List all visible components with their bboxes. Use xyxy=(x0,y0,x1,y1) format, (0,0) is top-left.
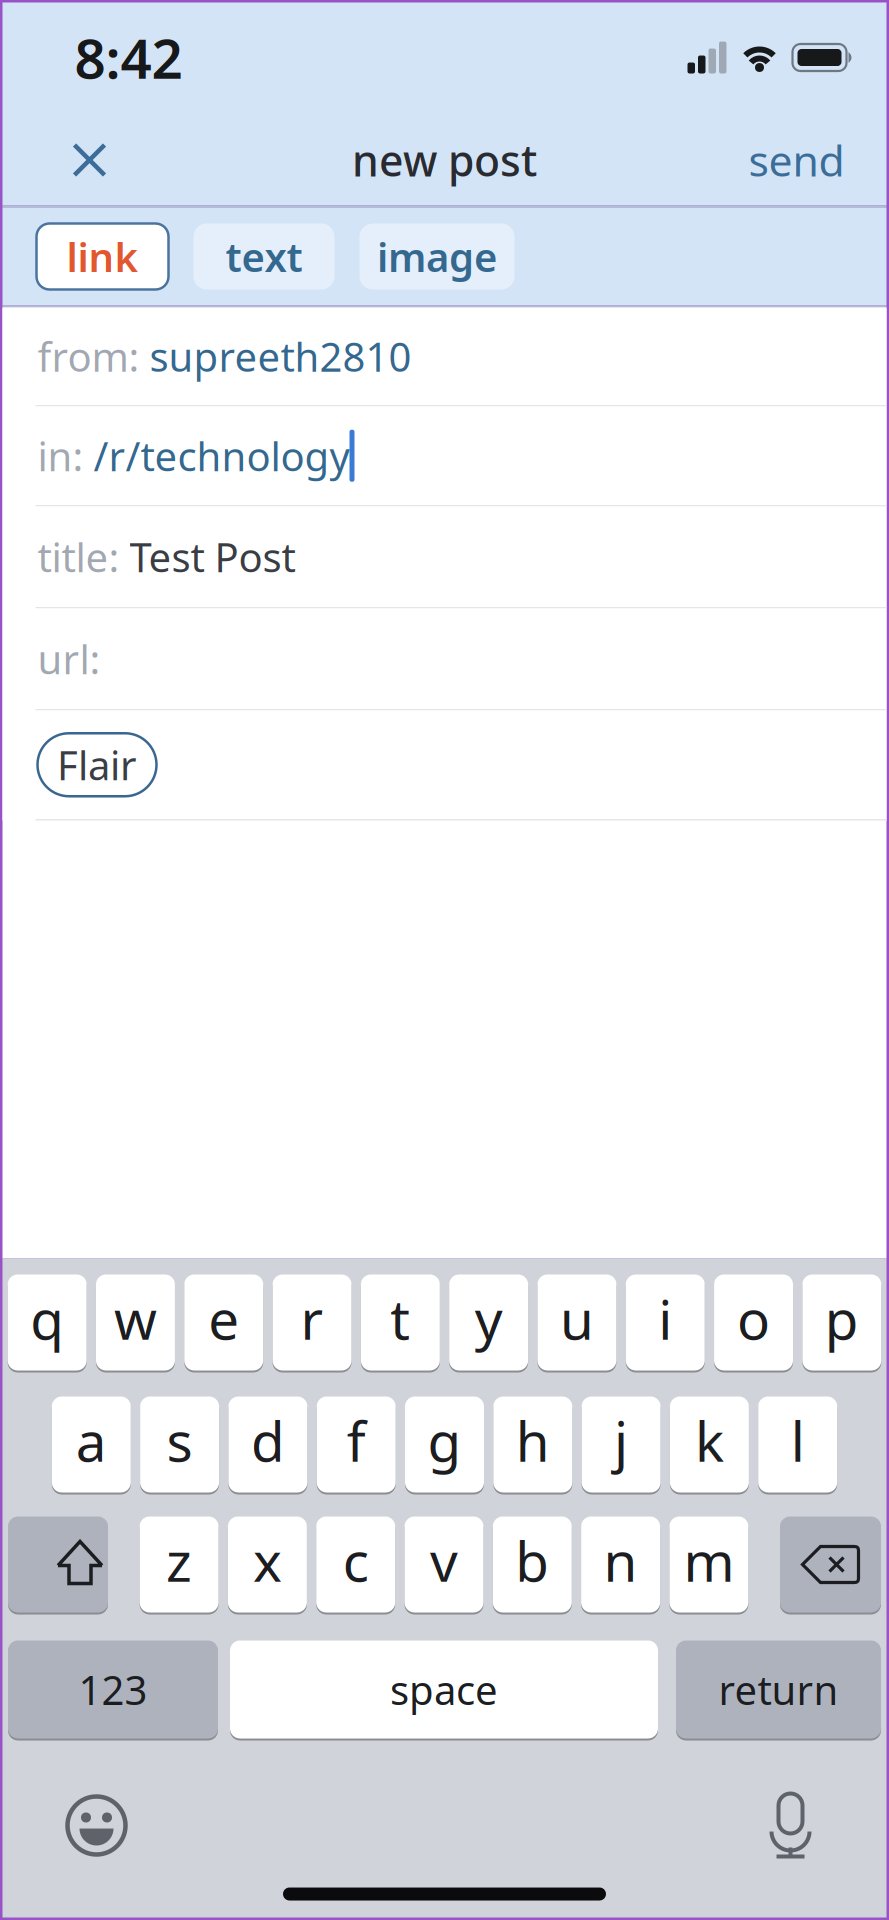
staticText: a xyxy=(76,1404,107,1477)
staticText: e xyxy=(208,1282,239,1355)
staticText: link xyxy=(66,230,138,283)
staticText: in: xyxy=(37,429,93,482)
button[interactable]: d xyxy=(228,1395,307,1493)
button[interactable]: title: xyxy=(2,506,886,608)
button[interactable]: c xyxy=(316,1515,395,1613)
staticText: h xyxy=(516,1404,550,1477)
staticText: v xyxy=(430,1524,458,1597)
button[interactable]: o xyxy=(714,1273,793,1371)
staticText: 8:42 xyxy=(74,21,182,94)
button[interactable]: Emoji xyxy=(2,1796,125,1854)
staticText: u xyxy=(560,1282,594,1355)
staticText: 123 xyxy=(78,1663,147,1716)
staticText: /r/technology xyxy=(93,429,349,482)
staticText: d xyxy=(251,1404,285,1477)
staticText: k xyxy=(695,1404,724,1477)
button[interactable]: space xyxy=(230,1639,658,1739)
staticText: b xyxy=(515,1524,549,1597)
button[interactable]: a xyxy=(52,1395,131,1493)
button[interactable]: 123 xyxy=(8,1639,218,1739)
staticText: space xyxy=(390,1663,498,1716)
staticText: q xyxy=(30,1282,64,1355)
staticText: title: xyxy=(37,530,129,583)
button[interactable]: h xyxy=(493,1395,572,1493)
staticText: o xyxy=(737,1282,770,1355)
staticText: w xyxy=(114,1282,157,1355)
button[interactable]: Flair xyxy=(37,733,156,796)
staticText: url: xyxy=(37,632,100,685)
staticText: c xyxy=(343,1524,369,1597)
staticText: m xyxy=(683,1524,734,1597)
button[interactable]: Dictation xyxy=(766,1793,886,1857)
staticText: g xyxy=(427,1404,461,1477)
button[interactable]: return xyxy=(676,1639,881,1739)
staticText: return xyxy=(718,1663,838,1716)
staticText: p xyxy=(825,1282,859,1355)
button[interactable]: l xyxy=(758,1395,837,1493)
button[interactable]: in: xyxy=(2,406,886,506)
button[interactable]: text xyxy=(193,223,334,289)
button[interactable]: w xyxy=(96,1273,175,1371)
button[interactable]: from: xyxy=(2,307,886,406)
button[interactable]: v xyxy=(404,1515,483,1613)
staticText: Flair xyxy=(57,738,137,791)
staticText: l xyxy=(791,1404,805,1477)
button[interactable]: s xyxy=(140,1395,219,1493)
button[interactable]: q xyxy=(8,1273,87,1371)
staticText: f xyxy=(347,1404,366,1477)
button[interactable]: u xyxy=(537,1273,616,1371)
staticText: z xyxy=(166,1524,192,1597)
button[interactable]: i xyxy=(626,1273,705,1371)
staticText: t xyxy=(390,1282,410,1355)
button[interactable]: n xyxy=(581,1515,660,1613)
button[interactable]: x xyxy=(228,1515,307,1613)
button[interactable]: send xyxy=(748,116,886,204)
staticText: Test Post xyxy=(129,530,295,583)
staticText: from: xyxy=(37,330,149,383)
button[interactable]: j xyxy=(582,1395,661,1493)
staticText: supreeth2810 xyxy=(149,330,411,383)
staticText: text xyxy=(225,230,302,283)
staticText: r xyxy=(300,1282,323,1355)
button[interactable]: z xyxy=(140,1515,219,1613)
button[interactable]: url: xyxy=(2,608,886,710)
staticText: send xyxy=(748,132,844,188)
staticText: j xyxy=(614,1404,628,1477)
button[interactable]: p xyxy=(802,1273,881,1371)
button[interactable]: image xyxy=(359,223,514,289)
button[interactable]: g xyxy=(405,1395,484,1493)
button[interactable]: b xyxy=(493,1515,572,1613)
button[interactable]: k xyxy=(670,1395,749,1493)
button[interactable]: Shift xyxy=(8,1515,108,1613)
button[interactable]: link xyxy=(36,223,168,289)
staticText: y xyxy=(475,1282,503,1355)
button[interactable]: e xyxy=(184,1273,263,1371)
button[interactable]: Close xyxy=(2,125,104,195)
staticText: x xyxy=(253,1524,282,1597)
button[interactable]: r xyxy=(272,1273,351,1371)
button[interactable]: y xyxy=(449,1273,528,1371)
button[interactable]: f xyxy=(317,1395,396,1493)
button[interactable]: Delete xyxy=(780,1515,881,1613)
button[interactable]: t xyxy=(361,1273,440,1371)
staticText: image xyxy=(377,230,497,283)
staticText: i xyxy=(658,1282,672,1355)
staticText: new post xyxy=(352,132,537,188)
staticText: s xyxy=(167,1404,193,1477)
staticText: n xyxy=(604,1524,638,1597)
button[interactable]: m xyxy=(669,1515,748,1613)
